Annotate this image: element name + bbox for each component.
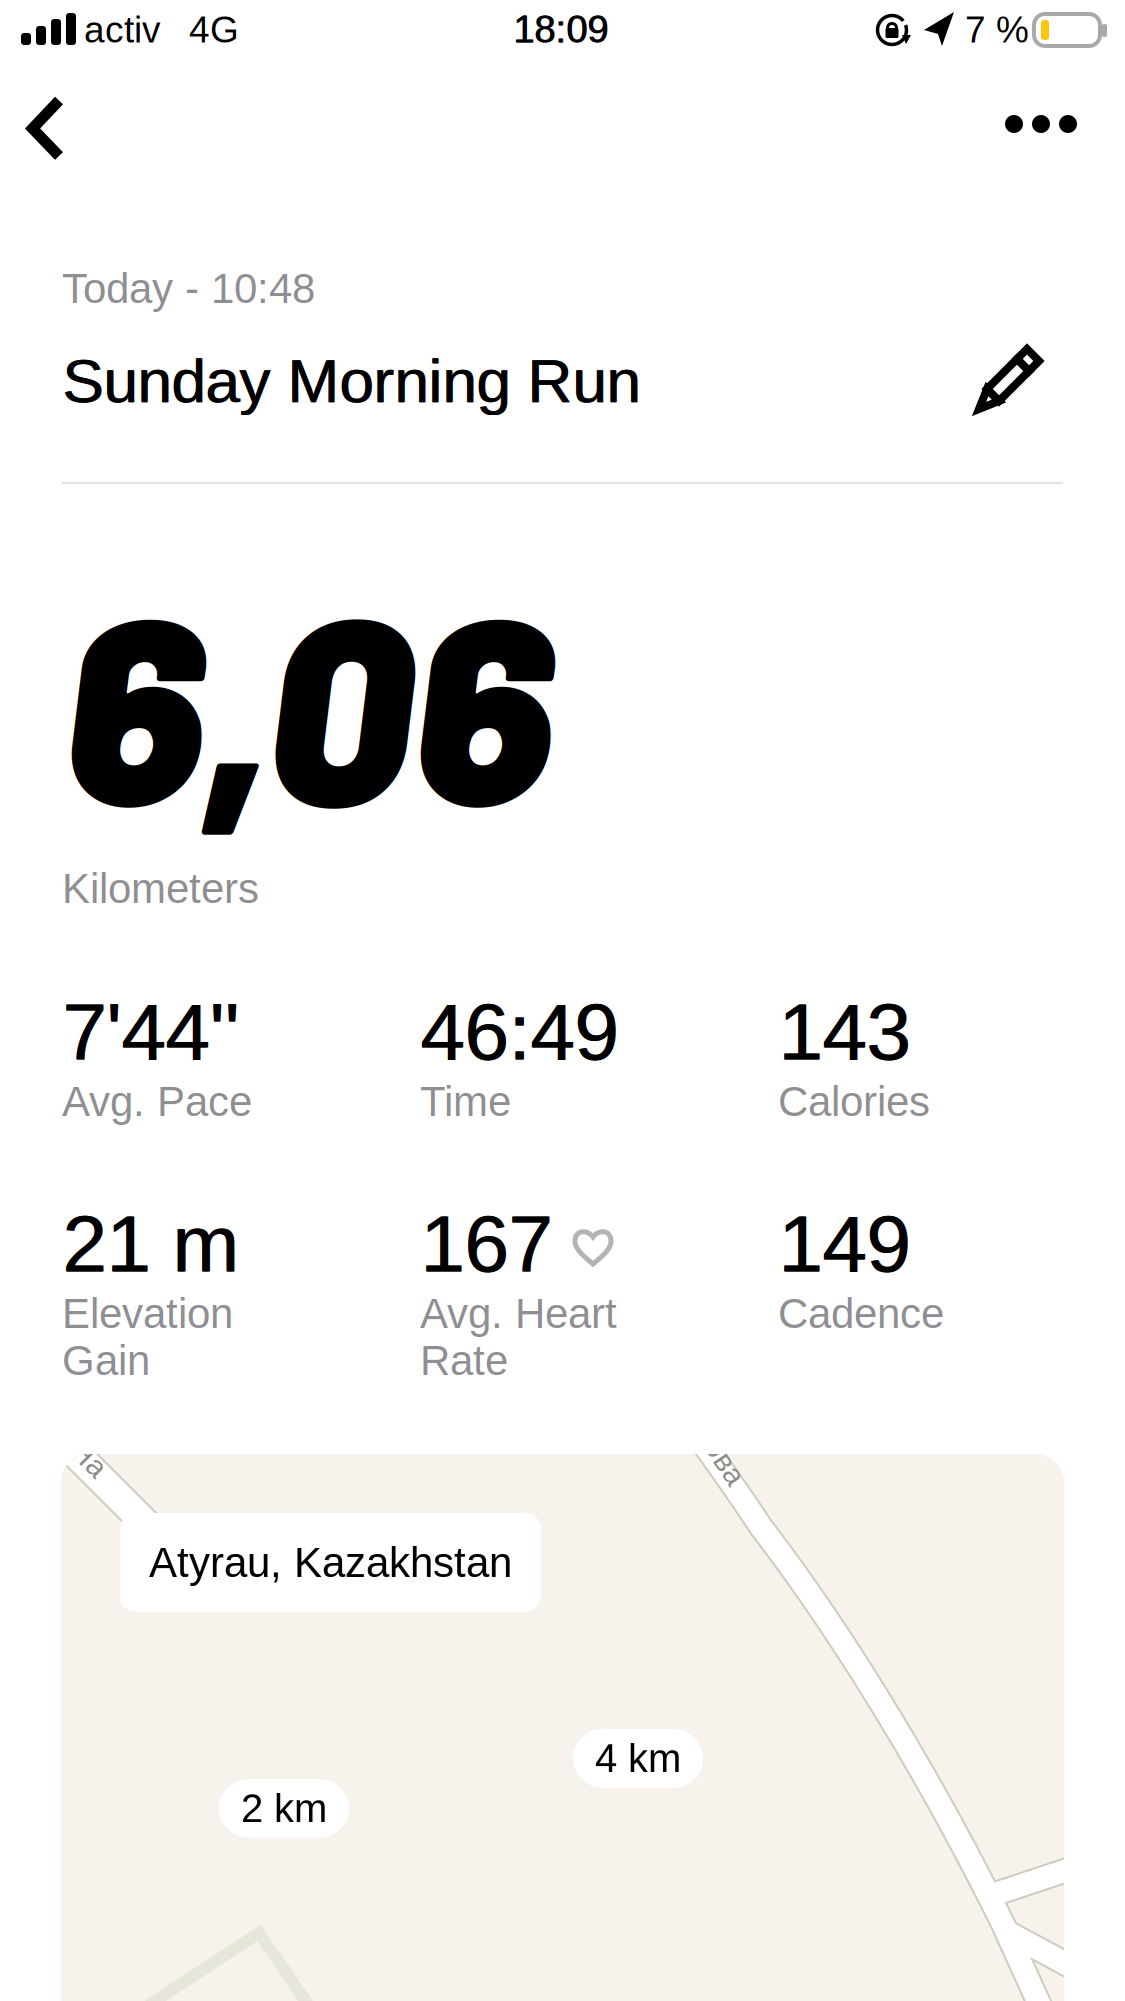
staticText: Today - 10:48 [62, 265, 315, 312]
staticText: Avg. Pace [62, 1078, 252, 1125]
staticText: Atyrau, Kazakhstan [149, 1539, 512, 1586]
staticText: 4G [189, 9, 239, 50]
staticText: 18:09 [513, 8, 608, 50]
staticText: 143 [779, 987, 911, 1076]
button[interactable]: Edit run name [955, 334, 1065, 424]
staticText: 149 [779, 1199, 911, 1288]
staticText: 167 [421, 1199, 553, 1288]
staticText: Elevation Gain [62, 1290, 233, 1384]
staticText: Cadence [778, 1290, 944, 1337]
button[interactable]: More options [982, 70, 1100, 172]
staticText: аНа [55, 1436, 111, 1469]
staticText: 7 % [965, 9, 1029, 50]
staticText: 18:09 [514, 8, 609, 50]
staticText: 7'44'' [63, 987, 240, 1076]
staticText: Calories [778, 1078, 930, 1125]
staticText: 7'44'' [62, 987, 239, 1076]
staticText: Time [420, 1078, 511, 1125]
staticText: activ [84, 9, 161, 50]
staticText: Avg. Heart Rate [420, 1290, 617, 1384]
staticText: 4 km [595, 1736, 681, 1781]
staticText: 21 m [62, 1199, 239, 1288]
staticText: 2 km [241, 1786, 327, 1831]
staticText: рипова [661, 1424, 761, 1457]
staticText: 46:49 [420, 987, 618, 1076]
staticText: 6,06 [63, 542, 553, 858]
staticText: 149 [778, 1199, 910, 1288]
staticText: 46:49 [421, 987, 619, 1076]
staticText: Kilometers [62, 865, 259, 912]
staticText: 21 m [63, 1199, 240, 1288]
staticText: 143 [778, 987, 910, 1076]
staticText: 167 [420, 1199, 552, 1288]
staticText: Sunday Morning Run [63, 346, 641, 415]
staticText: Sunday Morning Run [62, 346, 640, 415]
button[interactable]: Back [0, 70, 98, 172]
